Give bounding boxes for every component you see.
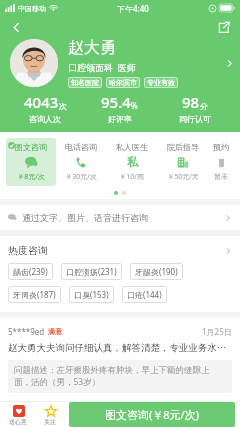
staticText: 分 [200,101,208,111]
button[interactable]: 院后指导 [157,138,208,186]
staticText: 下午4:40 [117,3,149,14]
staticText: 赵大勇大夫询问仔细认真，解答清楚，专业业务水平... [8,341,232,354]
button[interactable]: 热度咨询 [0,236,240,263]
staticText: 4043 [24,92,59,112]
staticText: ￥8元/次 [17,172,45,182]
staticText: 专业有效 [147,78,175,87]
staticText: 院后指导 [167,142,199,152]
button[interactable]: 送心意 [5,403,31,427]
button[interactable]: Back [4,16,28,38]
staticText: 预约 [213,142,229,152]
button[interactable]: 口疮(144) [122,286,167,303]
staticText: 中国移动 [18,4,46,13]
staticText: 咨询人次 [29,114,61,124]
staticText: 图文咨询 [15,142,47,152]
staticText: 通过文字、图片、语音进行咨询 [22,212,148,223]
button[interactable]: 图文咨询 [6,138,56,186]
staticText: 赵大勇 [68,38,116,58]
button[interactable]: 通过文字、图片、语音进行咨询 [0,205,240,230]
staticText: 好评率 [108,114,132,124]
button[interactable]: 牙龈炎(190) [130,263,183,280]
staticText: ￥10/周 [119,172,144,182]
button[interactable]: 图文咨询(￥8元/次) [69,402,235,427]
staticText: 暂未 [214,172,228,181]
button[interactable]: 关注 [37,403,63,427]
button[interactable]: 牙周炎(187) [8,286,61,303]
staticText: 电话咨询 [65,142,97,152]
button[interactable]: 5****9ed [0,318,240,401]
staticText: 次 [59,101,67,111]
staticText: 关注 [44,418,56,426]
staticText: 95.4 [101,92,131,112]
staticText: ￥50元/天 [167,172,199,182]
staticText: 同行认可 [179,114,211,124]
staticText: % [131,100,138,111]
staticText: 问题描述：左牙擦股外疼有肿块，早上下额的缝隙上面，活的（男，53岁） [14,365,226,388]
staticText: 龋齿(239) [13,266,48,277]
staticText: 牙龈炎(190) [135,266,178,277]
staticText: 私人医生 [116,142,148,152]
button[interactable]: 龋齿(239) [8,263,53,280]
staticText: 5****9ed [8,326,45,337]
staticText: 送心意 [9,418,27,426]
staticText: 1月25日 [202,326,232,337]
button[interactable]: 赵大勇 [0,38,240,88]
button[interactable]: 口臭(153) [69,286,114,303]
staticText: 口腔溃疡(231) [66,266,117,277]
button[interactable]: 口腔溃疡(231) [61,263,122,280]
button[interactable]: Share [211,16,235,38]
staticText: 口腔颌面科 医师 [68,61,136,73]
staticText: 哈尔滨市 [109,78,137,87]
staticText: 私 [127,155,138,169]
button[interactable]: 私人医生 [106,138,157,186]
button[interactable]: 电话咨询 [56,138,106,186]
staticText: 图文咨询(￥8元/次) [105,407,199,422]
staticText: 口疮(144) [127,289,162,300]
staticText: 知名医院 [71,78,99,87]
staticText: 牙周炎(187) [13,289,56,300]
staticText: 口臭(153) [74,289,109,300]
button[interactable]: 预约 [208,138,234,185]
staticText: 热度咨询 [8,244,48,257]
staticText: ￥30元/次 [65,172,97,182]
staticText: 98 [182,92,200,112]
staticText: 满意 [48,327,62,336]
